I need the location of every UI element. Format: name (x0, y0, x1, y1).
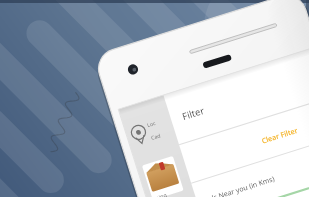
button[interactable]: Filter screen mockup (0, 0, 309, 197)
